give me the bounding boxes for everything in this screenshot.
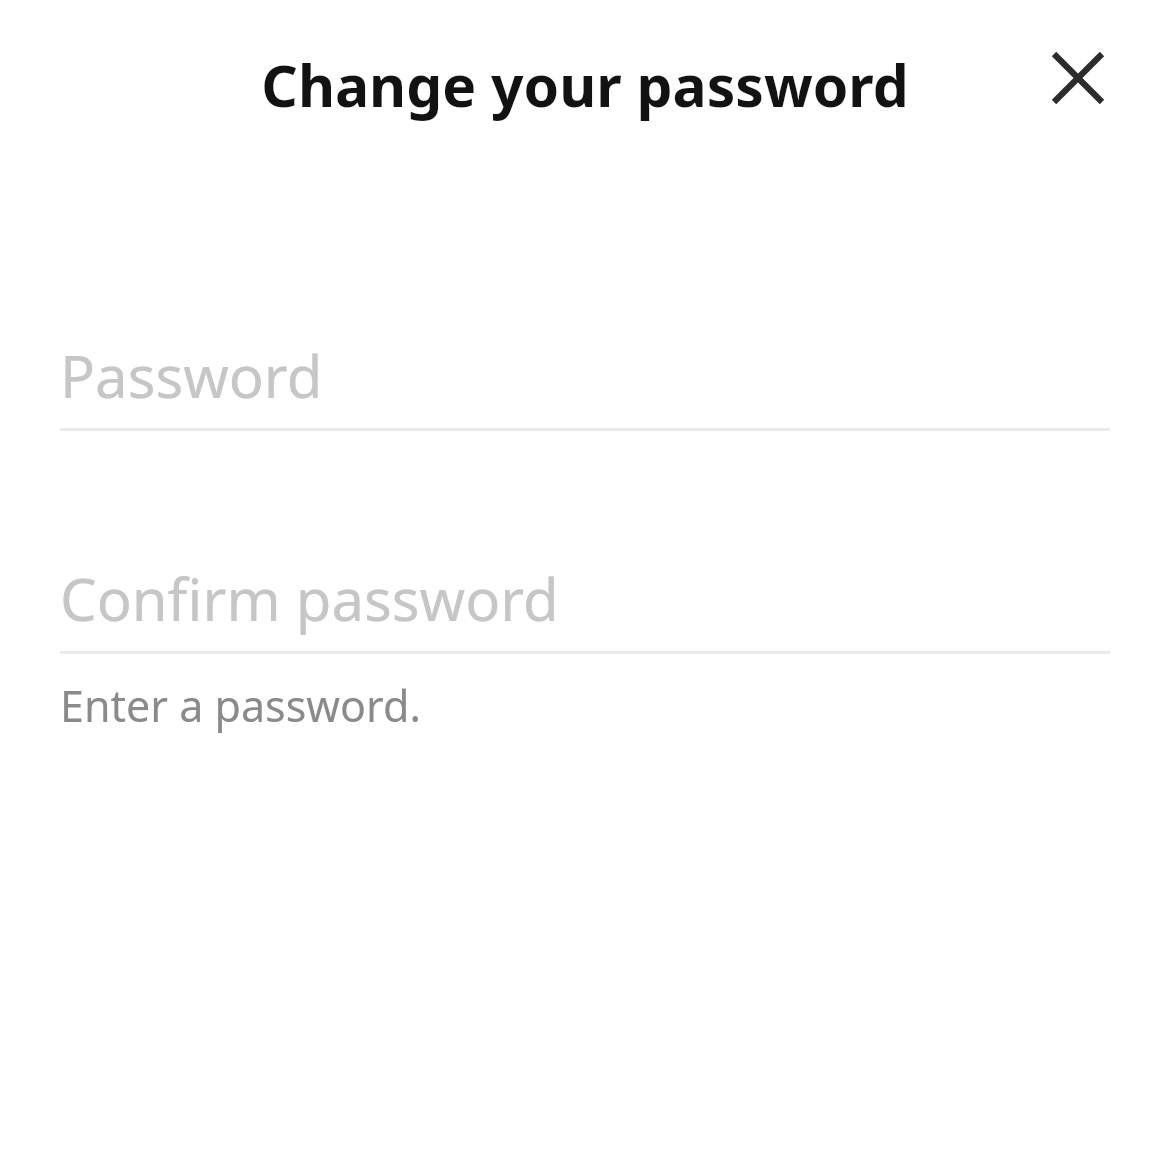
staticText: Change your password [0,46,1170,124]
button[interactable]: Password [60,318,1110,428]
staticText: Confirm password [60,559,559,638]
staticText: Password [60,336,323,415]
staticText: Enter a password. [60,676,1110,735]
button[interactable]: Confirm password [60,541,1110,651]
button[interactable]: Close [1030,30,1126,126]
